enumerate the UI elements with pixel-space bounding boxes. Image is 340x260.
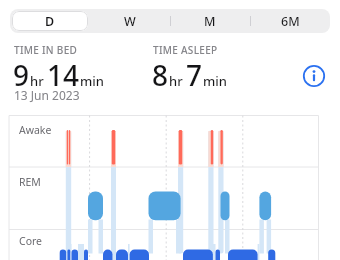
- staticText: 7: [186, 56, 203, 94]
- staticText: W: [124, 13, 136, 30]
- staticText: TIME ASLEEP: [153, 43, 218, 57]
- staticText: TIME IN BED: [14, 43, 78, 57]
- button[interactable]: M: [170, 9, 250, 33]
- staticText: 14: [47, 56, 80, 94]
- staticText: hr: [30, 72, 44, 90]
- staticText: Awake: [19, 123, 52, 137]
- button[interactable]: D: [12, 11, 88, 31]
- button[interactable]: [302, 64, 326, 88]
- staticText: hr: [169, 72, 183, 90]
- staticText: min: [80, 72, 104, 90]
- button[interactable]: W: [90, 9, 170, 33]
- staticText: REM: [19, 175, 41, 189]
- button[interactable]: 6M: [250, 9, 330, 33]
- staticText: D: [45, 13, 55, 30]
- staticText: 13 Jun 2023: [14, 87, 80, 103]
- staticText: M: [204, 13, 216, 30]
- staticText: 9: [13, 56, 30, 94]
- staticText: 6M: [281, 13, 300, 30]
- staticText: Core: [19, 234, 43, 248]
- staticText: min: [203, 72, 227, 90]
- staticText: 8: [152, 56, 169, 94]
